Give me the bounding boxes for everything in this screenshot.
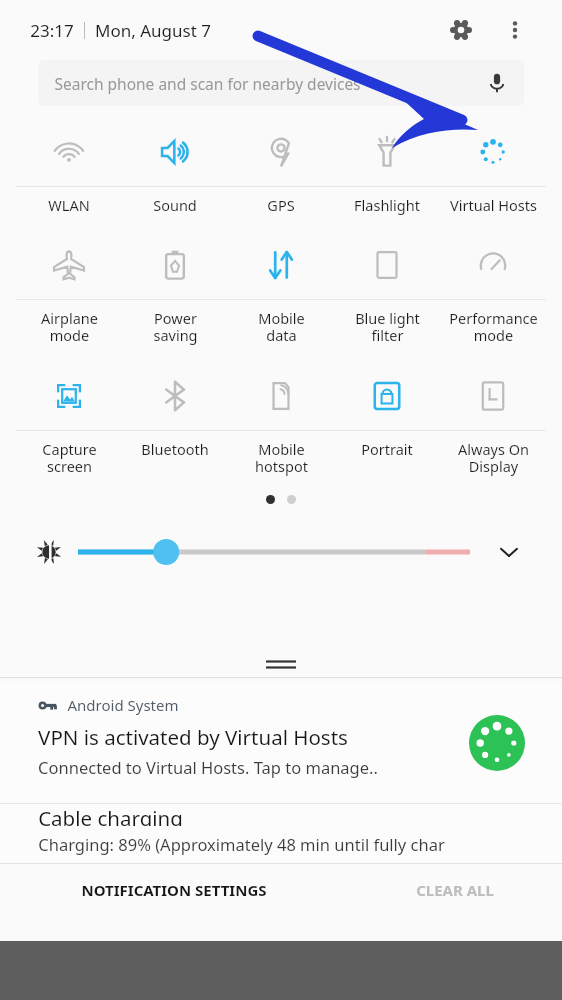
staticText: NOTIFICATION SETTINGS (81, 880, 267, 900)
staticText: Search phone and scan for nearby devices (54, 73, 361, 94)
button[interactable]: Expand brightness settings (492, 535, 526, 569)
staticText: Flashlight (354, 195, 420, 215)
button[interactable]: Blue light filter (334, 231, 440, 362)
staticText: Airplane mode (41, 308, 98, 345)
button[interactable]: Flashlight (334, 118, 440, 231)
button[interactable]: Android System (0, 682, 562, 803)
staticText: WLAN (48, 195, 90, 215)
staticText: Power saving (153, 308, 198, 345)
staticText: Virtual Hosts (450, 195, 537, 215)
button[interactable]: CLEAR ALL (347, 864, 562, 916)
button[interactable]: Bluetooth (122, 362, 228, 493)
staticText: 23:17 (30, 19, 74, 42)
staticText: CLEAR ALL (416, 880, 494, 900)
staticText: Connected to Virtual Hosts. Tap to manag… (38, 756, 378, 778)
staticText: Android System (67, 695, 179, 715)
button[interactable]: Mobile hotspot (228, 362, 334, 493)
button[interactable]: Airplane mode (16, 231, 122, 362)
button[interactable]: Mobile data (228, 231, 334, 362)
staticText: Always On Display (458, 439, 529, 476)
button[interactable]: Search phone and scan for nearby devices (38, 60, 524, 106)
staticText: VPN is activated by Virtual Hosts (38, 723, 348, 751)
button[interactable]: WLAN (16, 118, 122, 231)
staticText: Performance mode (449, 308, 538, 345)
button[interactable]: GPS (228, 118, 334, 231)
button[interactable]: Portrait (334, 362, 440, 493)
staticText: Blue light filter (355, 308, 420, 345)
staticText: Sound (153, 195, 197, 215)
staticText: Charging: 89% (Approximately 48 min unti… (38, 833, 445, 855)
button[interactable]: Virtual Hosts (440, 118, 546, 231)
staticText: Mon, August 7 (95, 19, 211, 42)
button[interactable]: Settings (444, 13, 478, 47)
button[interactable]: Cable charging (0, 803, 562, 863)
other: Voice search (486, 72, 508, 94)
staticText: Bluetooth (141, 439, 209, 459)
button[interactable]: Sound (122, 118, 228, 231)
staticText: Portrait (361, 439, 413, 459)
button[interactable]: Capture screen (16, 362, 122, 493)
button[interactable]: Performance mode (440, 231, 546, 362)
button[interactable]: Always On Display (440, 362, 546, 493)
staticText: Mobile hotspot (255, 439, 308, 476)
staticText: Cable charging (38, 804, 183, 826)
button[interactable]: NOTIFICATION SETTINGS (0, 864, 347, 916)
staticText: Capture screen (42, 439, 97, 476)
button[interactable]: More options (498, 13, 532, 47)
staticText: GPS (267, 195, 295, 215)
staticText: Mobile data (258, 308, 305, 345)
button[interactable]: Power saving (122, 231, 228, 362)
button[interactable] (78, 537, 470, 567)
